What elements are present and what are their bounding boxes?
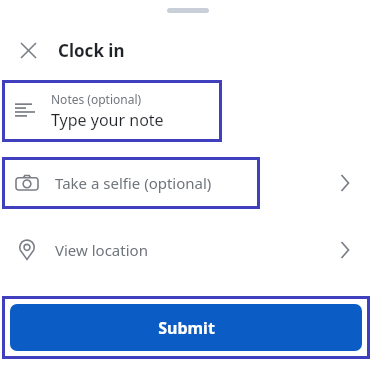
button[interactable]: View location [0, 224, 375, 276]
staticText: Clock in [58, 39, 125, 62]
staticText: Take a selfie (optional) [55, 173, 212, 193]
staticText: Notes (optional) [51, 91, 142, 107]
button[interactable]: Close [12, 34, 44, 66]
staticText: Type your note [51, 109, 164, 131]
button[interactable]: Notes (optional) [2, 80, 222, 142]
staticText: Submit [158, 317, 215, 339]
staticText: View location [55, 240, 148, 260]
button[interactable]: Submit [2, 296, 370, 359]
button[interactable]: Take a selfie (optional) [2, 157, 260, 209]
